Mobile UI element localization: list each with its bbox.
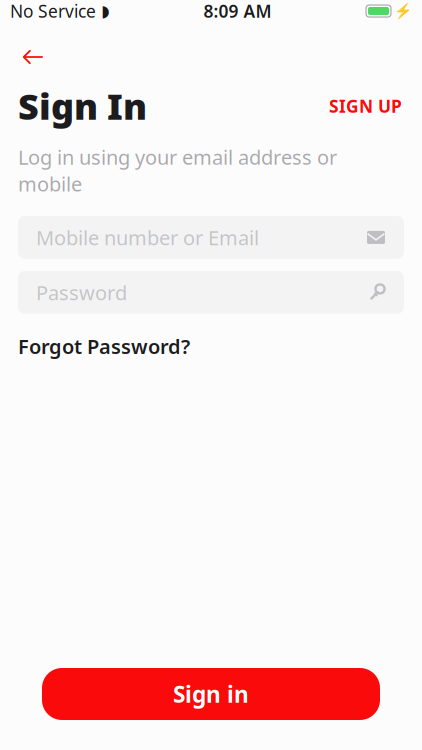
staticText: Forgot Password? [18,333,190,359]
button[interactable]: Sign in [42,668,380,720]
staticText: ◗ [101,2,109,20]
staticText: Sign in [173,679,249,709]
staticText: No Service [10,0,96,22]
staticText: 8:09 AM [203,0,271,22]
button[interactable]: Back [14,38,52,76]
button[interactable]: SIGN UP [327,88,404,123]
staticText: Password [36,279,127,306]
staticText: Mobile number or Email [36,224,259,251]
staticText: ⚡ [394,3,412,19]
staticText: Sign In [18,82,147,130]
staticText: SIGN UP [329,94,402,117]
staticText: Log in using your email address or mobil… [18,144,337,197]
button[interactable]: Forgot Password? [18,328,190,364]
